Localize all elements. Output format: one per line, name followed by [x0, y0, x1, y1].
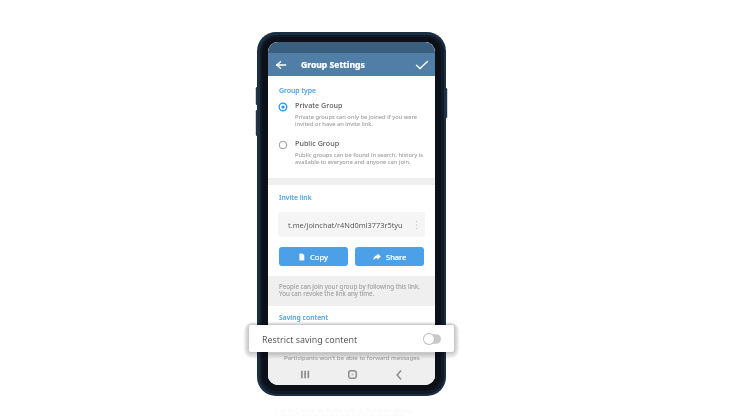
button[interactable]: Done [412, 57, 432, 72]
button[interactable]: Share [355, 247, 424, 266]
button[interactable]: Back [272, 57, 289, 72]
button[interactable]: Public Group [268, 138, 435, 170]
staticText: Restrict saving content [262, 333, 358, 345]
staticText: Copy [310, 252, 328, 262]
staticText: Participants won't be able to forward me… [284, 353, 420, 361]
button[interactable]: Recent apps [291, 364, 319, 385]
staticText: Share [386, 252, 407, 262]
button[interactable]: Restrict saving content [249, 325, 454, 352]
button[interactable]: t.me/joinchat/r4Nd0ml3773r5tyu [278, 212, 425, 237]
staticText: Group Settings [301, 59, 365, 71]
button[interactable]: Home [338, 364, 366, 385]
staticText: Public Group [295, 138, 340, 148]
button[interactable]: Private Group [268, 100, 435, 132]
button[interactable]: Copy [279, 247, 348, 266]
staticText: Invite link [279, 193, 312, 202]
staticText: Private Group [295, 100, 343, 110]
staticText: t.me/joinchat/r4Nd0ml3773r5tyu [288, 220, 403, 230]
staticText: People can join your group by following … [279, 282, 420, 298]
button[interactable]: Back [385, 364, 413, 385]
staticText: Private groups can only be joined if you… [295, 113, 418, 128]
staticText: Saving content [279, 313, 329, 322]
staticText: Group type [279, 86, 316, 95]
staticText: Public groups can be found in search, hi… [295, 151, 424, 166]
